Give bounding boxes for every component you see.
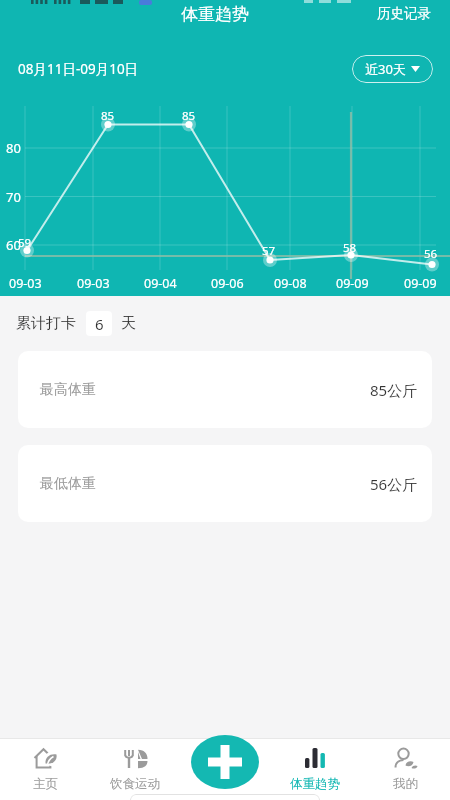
staticText: 主页 <box>33 776 58 792</box>
staticText: 09-08 <box>274 275 307 292</box>
staticText: 56 <box>424 246 438 262</box>
staticText: 体重趋势 <box>181 4 249 25</box>
staticText: 天 <box>121 314 136 333</box>
button[interactable]: 饮食运动 <box>90 738 180 800</box>
staticText: 56公斤 <box>370 474 418 494</box>
staticText: 饮食运动 <box>110 776 160 792</box>
staticText: 58 <box>343 240 357 256</box>
staticText: 09-09 <box>336 275 369 292</box>
staticText: 我的 <box>393 776 418 792</box>
button[interactable] <box>180 738 270 800</box>
staticText: 08月11日-09月10日 <box>18 60 139 78</box>
staticText: 80 <box>6 139 21 157</box>
button[interactable]: 体重趋势 <box>270 738 360 800</box>
staticText: 09-03 <box>9 275 42 292</box>
staticText: 60 <box>6 236 21 254</box>
staticText: 最高体重 <box>40 381 96 399</box>
staticText: 6 <box>95 314 104 334</box>
staticText: 85 <box>101 108 115 124</box>
staticText: 历史记录 <box>377 5 431 22</box>
staticText: 59 <box>18 235 32 251</box>
button[interactable]: 我的 <box>360 738 450 800</box>
button[interactable]: 最高体重 <box>18 351 432 428</box>
button[interactable]: 历史记录 <box>377 5 431 22</box>
button[interactable]: 最低体重 <box>18 445 432 522</box>
staticText: 09-09 <box>404 275 437 292</box>
staticText: 09-03 <box>77 275 110 292</box>
staticText: 57 <box>262 243 276 259</box>
staticText: 85 <box>182 108 196 124</box>
staticText: 近30天 <box>365 60 406 78</box>
staticText: 85公斤 <box>370 380 418 400</box>
staticText: 最低体重 <box>40 475 96 493</box>
staticText: 累计打卡 <box>16 314 76 333</box>
button[interactable]: 近30天 <box>352 55 433 83</box>
staticText: 09-06 <box>211 275 244 292</box>
staticText: 70 <box>6 188 21 206</box>
staticText: 09-04 <box>144 275 177 292</box>
button[interactable]: 主页 <box>0 738 90 800</box>
staticText: 体重趋势 <box>290 776 340 792</box>
